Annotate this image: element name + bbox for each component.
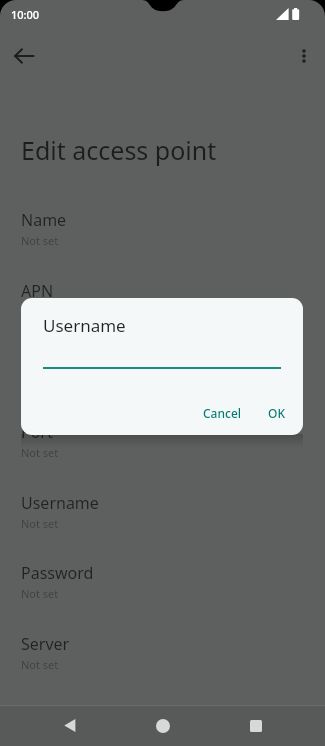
staticText: Not set — [21, 586, 59, 601]
staticText: APN — [21, 280, 54, 302]
staticText: Server — [21, 633, 70, 655]
staticText: 10:00 — [11, 7, 40, 22]
button[interactable]: MMSC — [0, 703, 325, 746]
staticText: Port — [21, 421, 53, 443]
button[interactable]: Home — [139, 705, 187, 746]
button[interactable]: Username — [0, 492, 325, 552]
button[interactable]: OK — [260, 399, 293, 427]
button[interactable]: Server — [0, 633, 325, 693]
staticText: Not set — [21, 304, 59, 319]
button[interactable]: Recent apps — [232, 705, 280, 746]
staticText: Username — [43, 314, 126, 337]
staticText: Name — [21, 209, 67, 231]
button[interactable]: APN — [0, 280, 325, 340]
staticText: Edit access point — [21, 133, 217, 167]
button[interactable]: Navigate up — [8, 40, 40, 72]
staticText: Cancel — [203, 405, 242, 421]
staticText: Not set — [21, 445, 59, 460]
button[interactable]: Cancel — [195, 399, 250, 427]
button[interactable]: Password — [0, 562, 325, 622]
button[interactable]: More options — [288, 40, 320, 72]
button[interactable]: Back — [45, 705, 93, 746]
staticText: MMSC — [21, 703, 69, 725]
staticText: Password — [21, 562, 94, 584]
button[interactable]: Port — [0, 421, 325, 481]
staticText: Username — [21, 492, 99, 514]
staticText: OK — [268, 405, 285, 421]
staticText: Not set — [21, 657, 59, 672]
button[interactable]: Name — [0, 209, 325, 269]
staticText: Not set — [21, 516, 59, 531]
staticText: Proxy — [21, 350, 63, 372]
button[interactable]: Proxy — [0, 350, 325, 410]
staticText: Not set — [21, 233, 59, 248]
